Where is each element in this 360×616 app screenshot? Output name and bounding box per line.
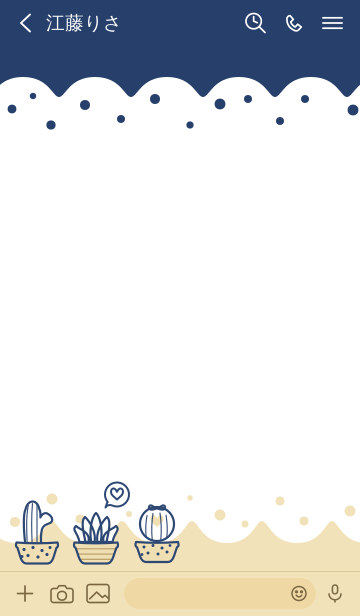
button[interactable]: Voice message [316,570,354,616]
button[interactable]: Search [236,0,275,46]
button[interactable]: Back [0,0,46,46]
staticText: 江藤りさ [46,11,122,34]
button[interactable]: Add [6,570,44,616]
button[interactable]: Call [275,0,314,46]
button[interactable]: Photos [80,570,124,616]
button[interactable]: Menu [314,0,351,46]
button[interactable]: Camera [44,570,80,616]
button[interactable] [124,578,316,609]
